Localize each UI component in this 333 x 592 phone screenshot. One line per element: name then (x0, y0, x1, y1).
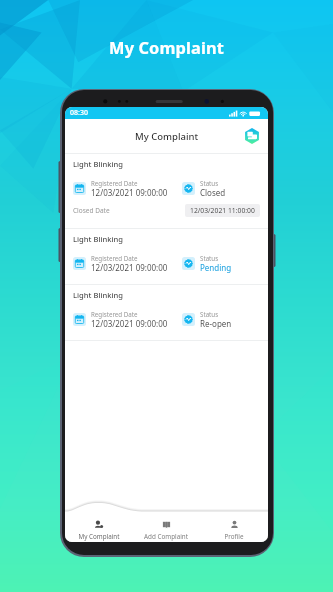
staticText: Status (200, 254, 219, 262)
staticText: Profile (224, 532, 244, 541)
staticText: My Complaint (135, 130, 199, 143)
button[interactable]: Translate (243, 127, 261, 145)
staticText: Registered Date (91, 254, 138, 262)
button[interactable]: Profile (200, 498, 268, 542)
staticText: Status (200, 310, 219, 318)
staticText: Closed (200, 187, 226, 198)
staticText: 08:30 (70, 108, 88, 118)
button[interactable]: My Complaint (65, 498, 132, 542)
staticText: 12/03/2021 09:00:00 (91, 262, 168, 273)
staticText: Light Blinking (73, 234, 124, 244)
staticText: 12/03/2021 09:00:00 (91, 187, 168, 198)
staticText: 12/03/2021 11:00:00 (190, 206, 255, 215)
staticText: Closed Date (73, 206, 110, 215)
button[interactable]: Light Blinking (65, 154, 268, 228)
button[interactable]: Add Complaint (132, 498, 200, 542)
staticText: Re-open (200, 318, 232, 329)
staticText: My Complaint (78, 532, 120, 541)
staticText: My Complaint (0, 36, 333, 58)
staticText: Registered Date (91, 179, 138, 187)
staticText: Pending (200, 262, 232, 273)
staticText: Light Blinking (73, 159, 124, 169)
button[interactable]: Light Blinking (65, 285, 268, 340)
button[interactable]: Light Blinking (65, 229, 268, 284)
staticText: Status (200, 179, 219, 187)
staticText: 12/03/2021 09:00:00 (91, 318, 168, 329)
staticText: Add Complaint (144, 532, 188, 541)
staticText: Registered Date (91, 310, 138, 318)
staticText: Light Blinking (73, 290, 124, 300)
